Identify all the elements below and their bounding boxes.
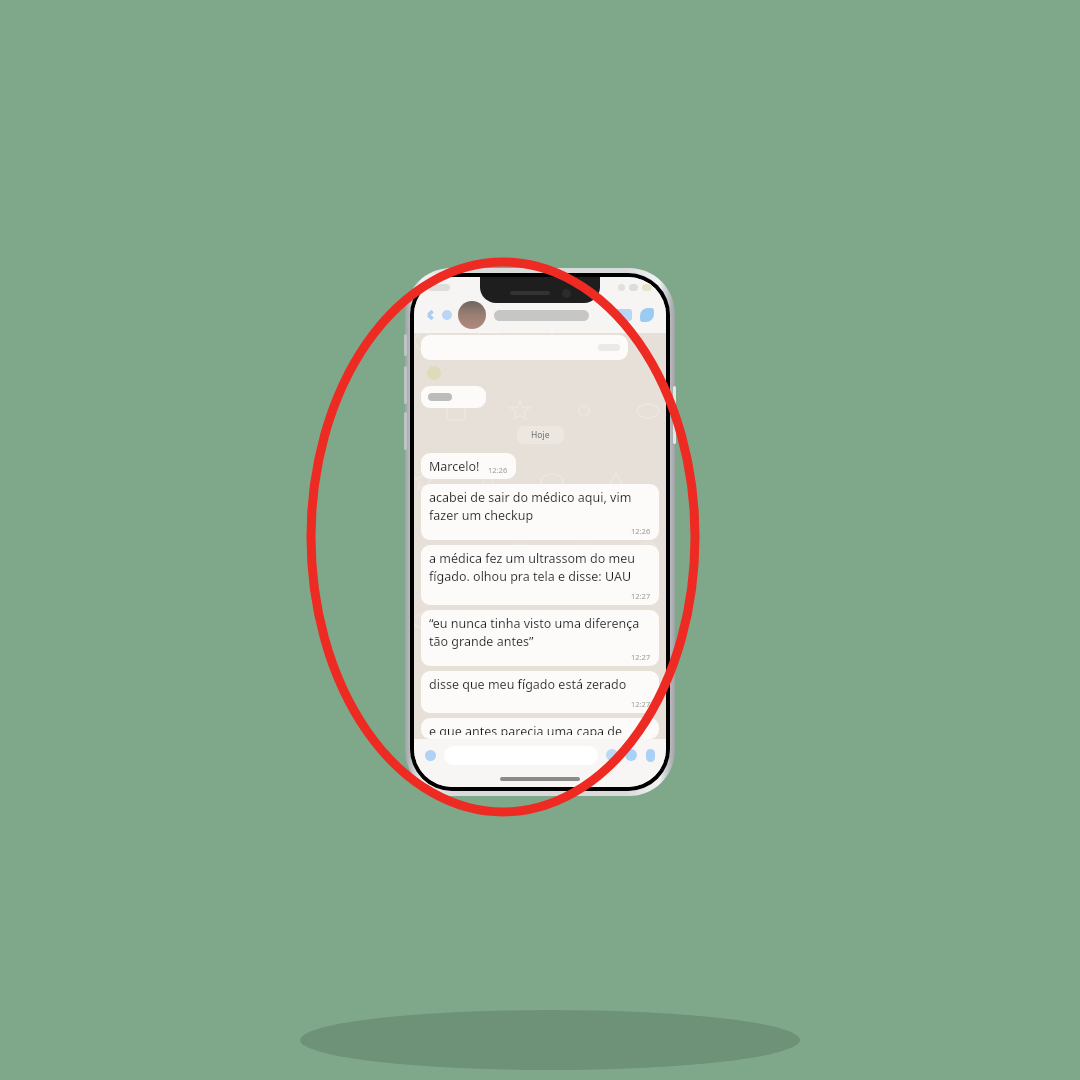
button[interactable]: Marcelo! — [421, 453, 516, 479]
staticText: 12:27 — [631, 652, 651, 662]
button[interactable]: Back — [422, 306, 440, 324]
staticText: a médica fez um ultrassom do meu — [429, 550, 636, 567]
staticText: 12:27 — [631, 591, 651, 601]
button[interactable]: Emoji — [422, 747, 438, 763]
staticText: Hoje — [531, 429, 550, 441]
button[interactable]: acabei de sair do médico aqui, vim — [421, 484, 659, 540]
staticText: tão grande antes” — [429, 633, 534, 650]
button[interactable]: Hoje — [517, 426, 564, 444]
button[interactable]: e que antes parecia uma capa de — [421, 718, 659, 739]
staticText: 12:26 — [631, 526, 651, 536]
staticText: fazer um checkup — [429, 507, 534, 524]
button[interactable]: a médica fez um ultrassom do meu — [421, 545, 659, 605]
staticText: e que antes parecia uma capa de — [429, 723, 623, 735]
staticText: 12:27 — [631, 699, 651, 709]
button[interactable]: Video call — [612, 304, 634, 326]
button[interactable]: disse que meu fígado está zerado — [421, 671, 659, 713]
button[interactable]: Back — [414, 297, 666, 333]
button[interactable] — [458, 301, 486, 329]
staticText: acabei de sair do médico aqui, vim — [429, 489, 632, 506]
staticText: fígado. olhou pra tela e disse: UAU — [429, 568, 632, 585]
button[interactable]: Voice call — [636, 304, 658, 326]
button[interactable]: Camera — [623, 747, 639, 763]
staticText: “eu nunca tinha visto uma diferença — [429, 615, 640, 632]
button[interactable]: Attach — [604, 747, 620, 763]
staticText: disse que meu fígado está zerado — [429, 676, 627, 693]
staticText: Marcelo! — [429, 458, 480, 475]
staticText: 12:26 — [488, 465, 508, 475]
button[interactable]: “eu nunca tinha visto uma diferença — [421, 610, 659, 666]
button[interactable]: Voice message — [642, 747, 658, 763]
button[interactable] — [421, 386, 486, 408]
button[interactable] — [421, 335, 628, 360]
